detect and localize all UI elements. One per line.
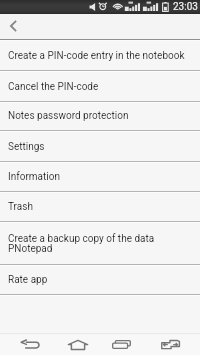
button[interactable]: Information	[0, 163, 200, 193]
button[interactable]: Home	[62, 333, 94, 355]
button[interactable]: Settings	[0, 133, 200, 163]
staticText: 23:03	[173, 1, 198, 13]
button[interactable]: Notes password protection	[0, 102, 200, 132]
button[interactable]: Create a backup copy of the data PNotepa…	[0, 224, 200, 266]
staticText: Notes password protection	[8, 110, 129, 122]
staticText: Trash	[8, 201, 33, 213]
staticText: Cancel the PIN-code	[8, 81, 99, 93]
button[interactable]: Back	[15, 333, 45, 355]
staticText: Create a backup copy of the data PNotepa…	[8, 233, 155, 255]
button[interactable]: Recent apps	[106, 333, 137, 355]
button[interactable]: Cancel the PIN-code	[0, 72, 200, 103]
button[interactable]: Rate app	[0, 266, 200, 296]
staticText: Create a PIN-code entry in the notebook	[8, 50, 185, 62]
button[interactable]: Switch apps	[155, 333, 186, 355]
button[interactable]: Trash	[0, 193, 200, 223]
staticText: Settings	[8, 141, 45, 153]
button[interactable]: Create a PIN-code entry in the notebook	[0, 41, 200, 72]
button[interactable]: Back	[0, 14, 26, 38]
staticText: Rate app	[8, 274, 48, 286]
staticText: Information	[8, 171, 60, 183]
